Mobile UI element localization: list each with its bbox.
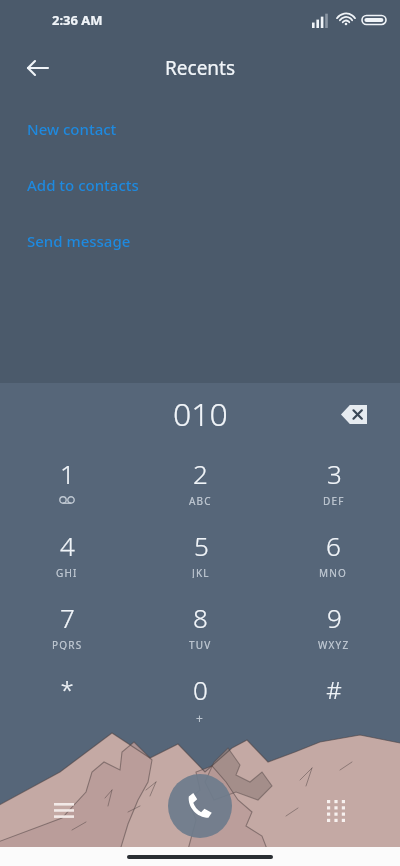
button[interactable]: # (267, 661, 400, 733)
staticText: 6 (326, 528, 341, 563)
staticText: TUV (189, 638, 212, 650)
staticText: * (60, 673, 74, 706)
staticText: + (196, 710, 205, 722)
staticText: New contact (27, 119, 117, 139)
staticText: JKL (192, 566, 210, 578)
button[interactable]: 4 (0, 517, 134, 589)
button[interactable]: 3 (267, 445, 400, 517)
staticText: Add to contacts (27, 175, 139, 195)
staticText: 010 (173, 392, 228, 436)
staticText: WXYZ (318, 638, 350, 650)
button[interactable]: 2 (134, 445, 267, 517)
button[interactable]: Back (14, 44, 62, 92)
button[interactable]: 1 (0, 445, 134, 517)
button[interactable]: Dialpad (312, 787, 360, 835)
staticText: 3 (327, 456, 342, 491)
button[interactable]: Backspace (332, 392, 376, 436)
button[interactable]: 0 (134, 661, 267, 733)
staticText: PQRS (52, 638, 83, 650)
button[interactable]: New contact (0, 112, 400, 146)
staticText: 1 (60, 456, 75, 491)
staticText: 2 (193, 456, 208, 491)
staticText: 5 (194, 528, 209, 563)
staticText: 8 (193, 600, 208, 635)
staticText: ABC (189, 494, 212, 506)
staticText: 7 (60, 600, 75, 635)
button[interactable]: Send message (0, 224, 400, 258)
button[interactable]: Call (168, 774, 232, 838)
staticText: # (326, 673, 342, 706)
button[interactable]: 6 (267, 517, 400, 589)
button[interactable]: 9 (267, 589, 400, 661)
staticText: 9 (327, 600, 342, 635)
button[interactable]: 8 (134, 589, 267, 661)
staticText: DEF (323, 494, 345, 506)
staticText: 4 (60, 528, 75, 563)
button[interactable]: * (0, 661, 134, 733)
button[interactable]: Add to contacts (0, 168, 400, 202)
button[interactable]: 7 (0, 589, 134, 661)
staticText: MNO (319, 566, 348, 578)
staticText: Recents (165, 55, 236, 81)
staticText: Send message (27, 231, 131, 251)
button[interactable]: Menu (40, 787, 88, 835)
staticText: 0 (193, 672, 208, 707)
button[interactable]: 5 (134, 517, 267, 589)
staticText: GHI (56, 566, 78, 578)
staticText: 2:36 AM (52, 11, 103, 29)
